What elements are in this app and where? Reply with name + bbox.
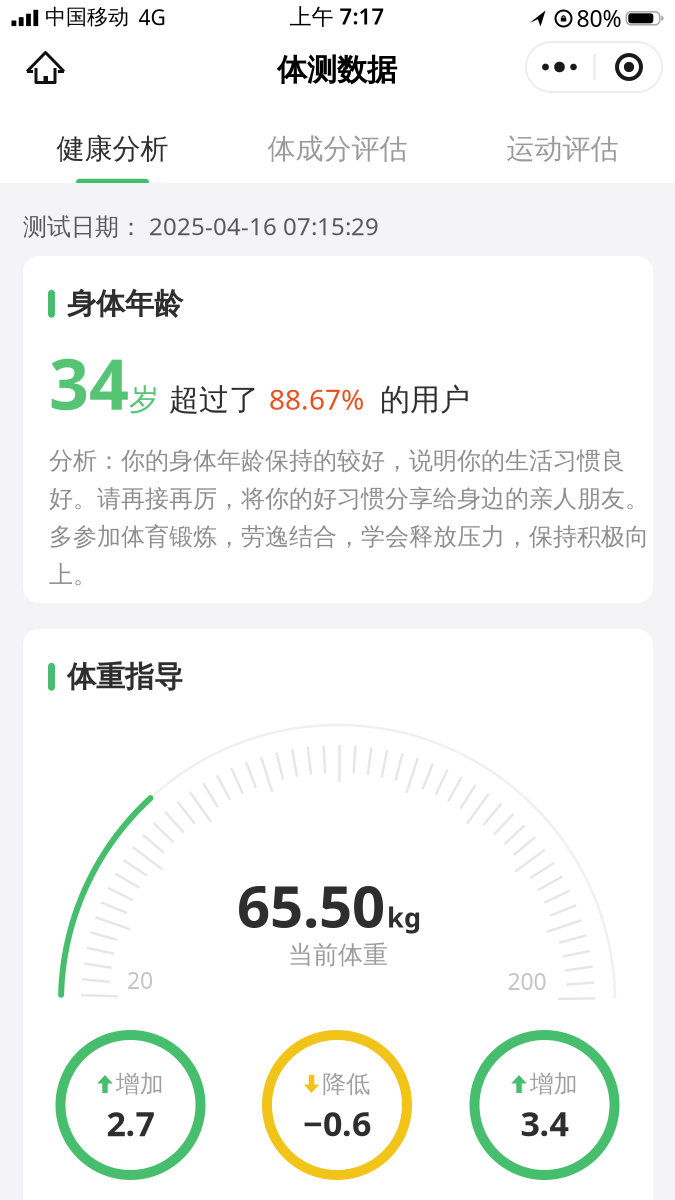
staticText: 65.50 [237,866,385,943]
staticText: 上午 7:17 [289,1,384,31]
staticText: 当前体重 [288,940,388,970]
staticText: 体成分评估 [267,132,407,166]
button[interactable] [20,43,70,93]
staticText: 34 [49,336,129,429]
staticText: 增加 [116,1069,164,1099]
staticText: 分析：你的身体年龄保持的较好，说明你的生活习惯良 好。请再接再厉，将你的好习惯分… [49,446,649,589]
staticText: 测试日期： 2025-04-16 07:15:29 [23,210,379,242]
staticText: 20 [127,965,153,995]
staticText: 200 [507,966,546,996]
button[interactable] [525,41,663,93]
staticText: 80% [576,3,621,33]
staticText: 2.7 [106,1100,154,1146]
staticText: 健康分析 [56,132,168,166]
staticText: 的用户 [380,381,470,418]
staticText: 超过了 [169,381,259,418]
staticText: 降低 [322,1069,370,1099]
staticText: 88.67% [269,380,364,417]
staticText: 身体年龄 [67,286,183,322]
staticText: 体重指导 [67,659,183,695]
staticText: kg [387,899,421,935]
staticText: 中国移动 [45,4,129,30]
button[interactable]: 健康分析 [0,110,225,188]
staticText: 岁 [129,381,159,418]
staticText: 运动评估 [506,132,618,166]
staticText: 4G [138,3,165,31]
staticText: 体测数据 [277,52,397,88]
staticText: 增加 [530,1069,578,1099]
button[interactable]: 体成分评估 [225,110,450,188]
staticText: −0.6 [303,1100,371,1146]
staticText: 3.4 [520,1100,568,1146]
button[interactable]: 运动评估 [450,110,675,188]
